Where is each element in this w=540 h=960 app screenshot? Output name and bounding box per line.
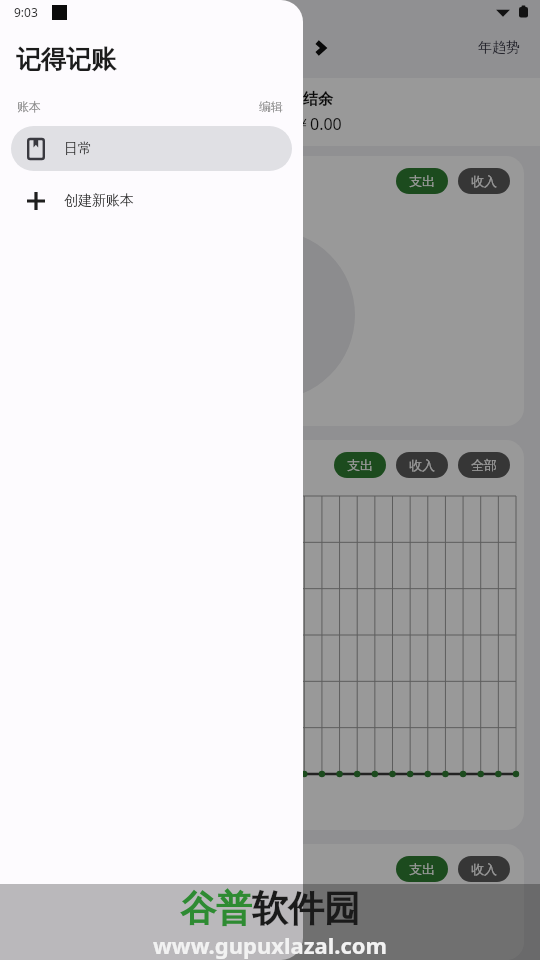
staticText: 全部 — [471, 457, 497, 473]
staticText: 支出 — [409, 861, 435, 877]
button[interactable]: Next month — [300, 28, 340, 68]
staticText: 日常 — [64, 140, 92, 158]
button[interactable]: 收入 — [458, 168, 510, 194]
button[interactable]: 全部 — [458, 452, 510, 478]
button[interactable]: 支出 — [16, 440, 524, 830]
staticText: 账本 — [17, 99, 41, 114]
staticText: 谷普 — [180, 886, 252, 931]
staticText: 结余 — [303, 90, 333, 109]
button[interactable]: 支出 — [16, 844, 524, 960]
button[interactable]: 创建新账本 — [11, 178, 292, 223]
button[interactable]: 支出 — [396, 856, 448, 882]
button[interactable]: 编辑 — [255, 97, 287, 116]
staticText: 软件园 — [252, 886, 360, 931]
button[interactable]: 结余 — [16, 78, 540, 146]
staticText: 收入 — [471, 861, 497, 877]
staticText: 创建新账本 — [64, 192, 134, 210]
staticText: 9:03 — [14, 4, 38, 20]
staticText: 收入 — [471, 173, 497, 189]
staticText: 支出 — [409, 173, 435, 189]
staticText: www.gupuxlazal.com — [153, 930, 387, 960]
staticText: 支出 — [347, 457, 373, 473]
staticText: ￥0.00 — [294, 113, 342, 135]
button[interactable]: 年趋势 — [472, 35, 526, 61]
staticText: 编辑 — [259, 99, 283, 114]
staticText: 年趋势 — [478, 39, 520, 57]
button[interactable]: 收入 — [458, 856, 510, 882]
button[interactable]: 收入 — [396, 452, 448, 478]
button[interactable]: 支出 — [16, 156, 524, 426]
button[interactable]: 支出 — [396, 168, 448, 194]
button[interactable]: 日常 — [11, 126, 292, 171]
button[interactable]: 支出 — [334, 452, 386, 478]
staticText: 记得记账 — [16, 44, 116, 75]
staticText: 收入 — [409, 457, 435, 473]
